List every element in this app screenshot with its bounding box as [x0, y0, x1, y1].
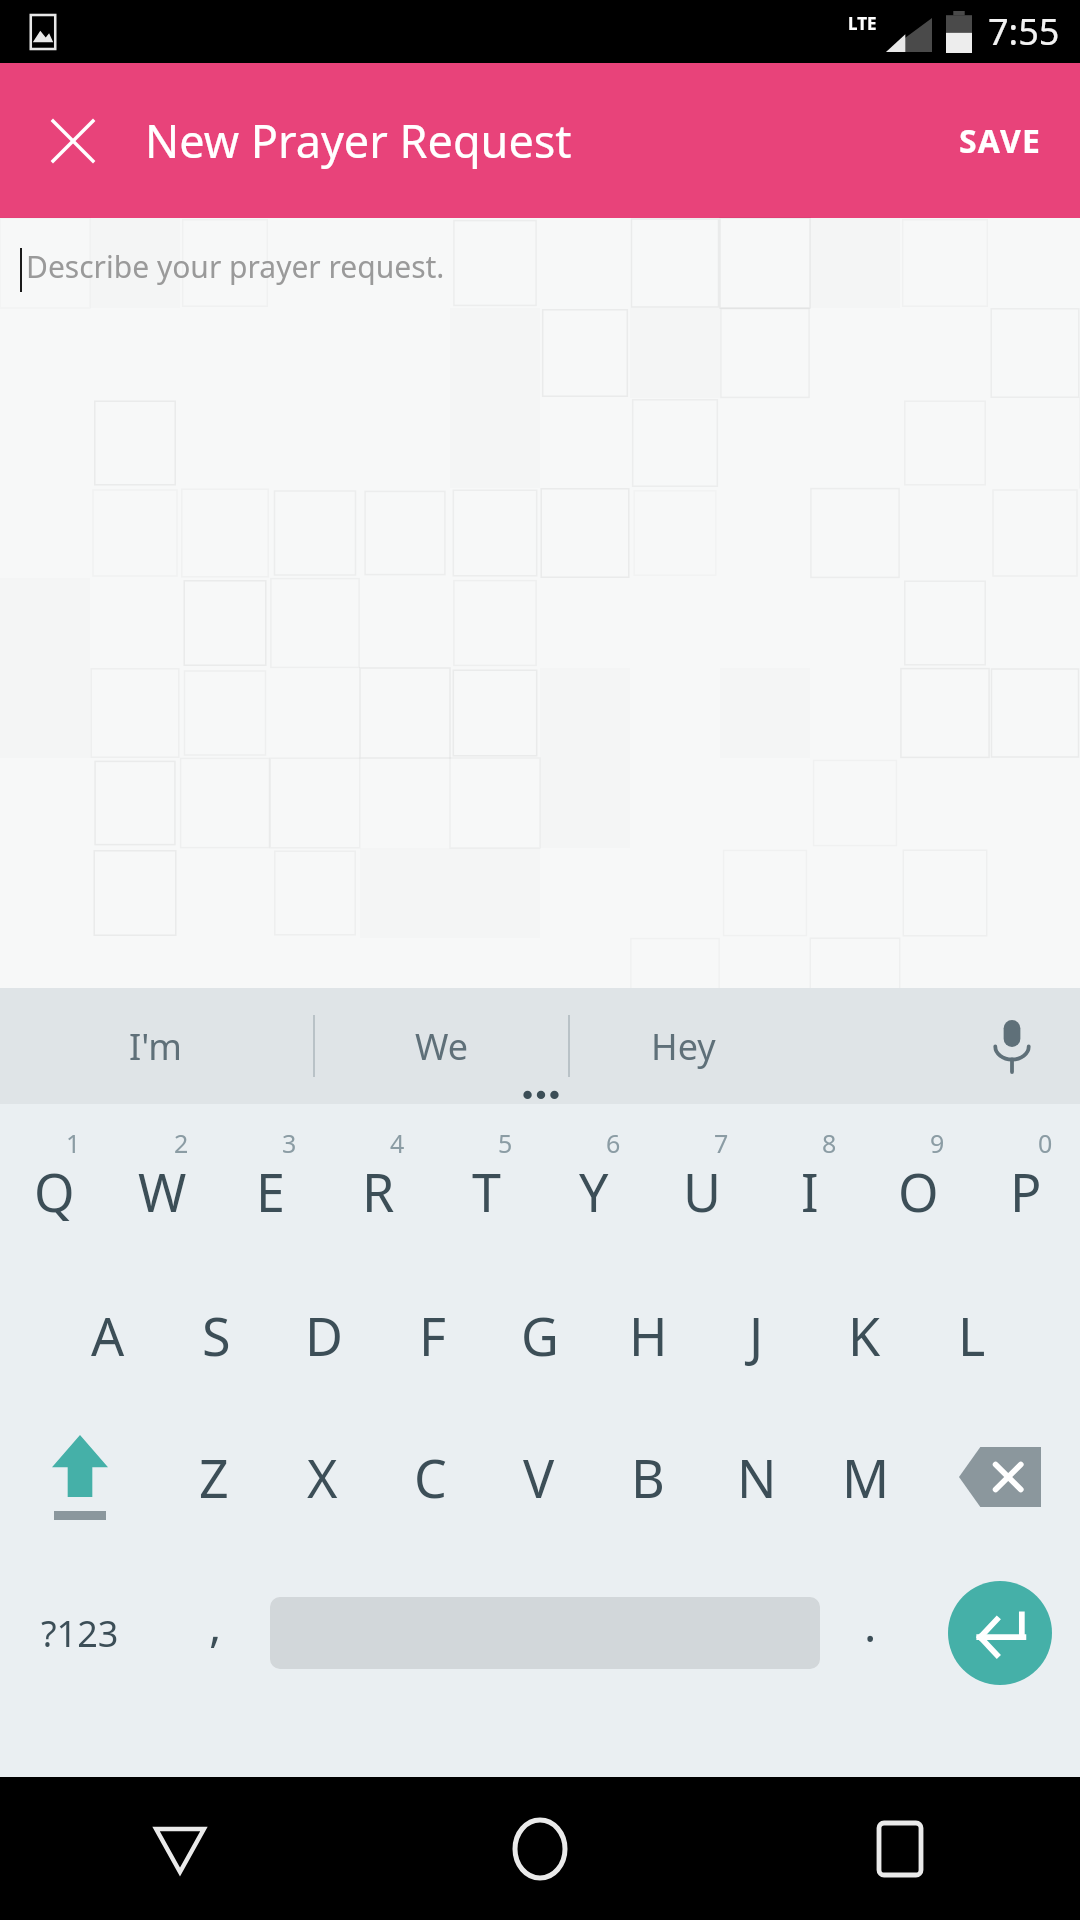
- button[interactable]: 0: [972, 1104, 1080, 1264]
- button[interactable]: C: [376, 1406, 484, 1548]
- button[interactable]: Voice input: [962, 996, 1062, 1096]
- staticText: G: [521, 1300, 559, 1371]
- staticText: W: [138, 1156, 187, 1227]
- button[interactable]: B: [593, 1406, 702, 1548]
- button[interactable]: N: [702, 1406, 811, 1548]
- staticText: C: [414, 1442, 447, 1513]
- button[interactable]: 6: [540, 1104, 648, 1264]
- button[interactable]: A: [54, 1264, 162, 1406]
- button[interactable]: V: [484, 1406, 593, 1548]
- staticText: 4: [390, 1126, 405, 1160]
- button[interactable]: 9: [864, 1104, 972, 1264]
- staticText: I'm: [129, 1022, 182, 1071]
- staticText: L: [958, 1300, 986, 1371]
- button[interactable]: 8: [756, 1104, 864, 1264]
- button[interactable]: G: [486, 1264, 594, 1406]
- button[interactable]: J: [702, 1264, 810, 1406]
- staticText: ,: [209, 1593, 222, 1656]
- button[interactable]: M: [811, 1406, 920, 1548]
- button[interactable]: 5: [432, 1104, 540, 1264]
- staticText: E: [256, 1156, 285, 1227]
- staticText: Q: [34, 1156, 75, 1227]
- staticText: SAVE: [959, 119, 1042, 163]
- button[interactable]: Back: [0, 1777, 360, 1920]
- staticText: I: [801, 1156, 819, 1227]
- staticText: Describe your prayer request.: [26, 246, 445, 287]
- button[interactable]: .: [820, 1548, 920, 1718]
- button[interactable]: Shift: [0, 1406, 160, 1548]
- staticText: 7: [714, 1126, 729, 1160]
- staticText: We: [415, 1022, 469, 1071]
- button[interactable]: ?123: [0, 1548, 160, 1718]
- staticText: V: [523, 1442, 555, 1513]
- button[interactable]: 1: [0, 1104, 108, 1264]
- staticText: X: [307, 1442, 338, 1513]
- button[interactable]: F: [378, 1264, 486, 1406]
- staticText: 7:55: [988, 7, 1060, 56]
- staticText: 1: [66, 1126, 81, 1160]
- button[interactable]: SAVE: [945, 105, 1056, 177]
- button[interactable]: ,: [160, 1548, 270, 1718]
- button[interactable]: D: [270, 1264, 378, 1406]
- button[interactable]: 2: [108, 1104, 216, 1264]
- button[interactable]: K: [810, 1264, 918, 1406]
- button[interactable]: S: [162, 1264, 270, 1406]
- button[interactable]: I'm: [0, 988, 310, 1104]
- staticText: 8: [822, 1126, 837, 1160]
- staticText: A: [91, 1300, 125, 1371]
- staticText: 0: [1038, 1126, 1053, 1160]
- staticText: B: [631, 1442, 665, 1513]
- staticText: H: [629, 1300, 668, 1371]
- staticText: Hey: [651, 1022, 716, 1071]
- staticText: O: [898, 1156, 939, 1227]
- button[interactable]: 7: [648, 1104, 756, 1264]
- staticText: U: [683, 1156, 722, 1227]
- button[interactable]: 3: [216, 1104, 324, 1264]
- staticText: 6: [606, 1126, 621, 1160]
- staticText: J: [749, 1300, 764, 1371]
- button[interactable]: L: [918, 1264, 1026, 1406]
- staticText: 3: [282, 1126, 297, 1160]
- button[interactable]: Recent apps: [720, 1777, 1080, 1920]
- staticText: LTE: [848, 12, 877, 35]
- button[interactable]: Enter: [948, 1581, 1052, 1685]
- staticText: Z: [199, 1442, 229, 1513]
- button[interactable]: Hey: [572, 988, 794, 1104]
- staticText: D: [305, 1300, 343, 1371]
- staticText: N: [737, 1442, 777, 1513]
- staticText: .: [864, 1593, 877, 1656]
- staticText: New Prayer Request: [145, 110, 572, 171]
- staticText: S: [202, 1300, 231, 1371]
- staticText: R: [362, 1156, 395, 1227]
- button[interactable]: We: [316, 988, 568, 1104]
- staticText: K: [848, 1300, 881, 1371]
- button[interactable]: H: [594, 1264, 702, 1406]
- staticText: P: [1010, 1156, 1042, 1227]
- staticText: 9: [930, 1126, 945, 1160]
- button[interactable]: 4: [324, 1104, 432, 1264]
- staticText: ?123: [41, 1609, 119, 1658]
- staticText: T: [472, 1156, 501, 1227]
- staticText: Y: [579, 1156, 609, 1227]
- staticText: F: [419, 1300, 446, 1371]
- staticText: 5: [498, 1126, 513, 1160]
- button[interactable]: Z: [160, 1406, 268, 1548]
- button[interactable]: X: [268, 1406, 376, 1548]
- button[interactable]: Close: [28, 96, 118, 186]
- button[interactable]: Backspace: [920, 1406, 1080, 1548]
- staticText: M: [842, 1442, 890, 1513]
- staticText: 2: [174, 1126, 189, 1160]
- button[interactable]: Home: [360, 1777, 720, 1920]
